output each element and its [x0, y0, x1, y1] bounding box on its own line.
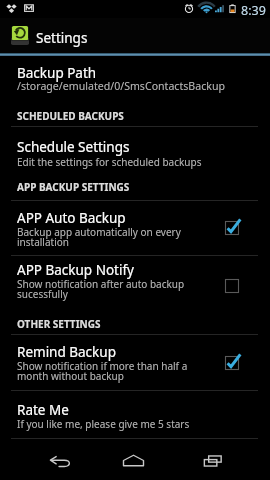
staticText: Remind Backup: [17, 343, 116, 361]
staticText: Settings: [36, 29, 88, 47]
staticText: /storage/emulated/0/SmsContactsBackup: [17, 79, 257, 93]
button[interactable]: Checked: [219, 215, 245, 241]
staticText: APP BACKUP SETTINGS: [17, 180, 130, 194]
button[interactable]: Unchecked: [219, 273, 245, 299]
button[interactable]: Recent apps: [183, 440, 243, 480]
button[interactable]: APP Auto Backup: [0, 201, 270, 255]
staticText: APP Auto Backup: [17, 209, 126, 227]
staticText: Show notification after auto backup suce…: [17, 277, 197, 301]
button[interactable]: Remind Backup: [0, 335, 270, 390]
staticText: Edit the settings for scheduled backups: [17, 155, 222, 169]
staticText: Show notification if more than half a mo…: [17, 359, 197, 383]
staticText: APP Backup Notify: [17, 261, 134, 279]
button[interactable]: APP Backup Notify: [0, 256, 270, 315]
button[interactable]: Backup Path: [0, 56, 270, 104]
button[interactable]: Checked: [219, 350, 245, 376]
staticText: Backup app automatically on every instal…: [17, 225, 197, 249]
staticText: OTHER SETTINGS: [17, 317, 101, 331]
staticText: Rate Me: [17, 401, 69, 419]
staticText: If you like me, please give me 5 stars: [17, 417, 222, 431]
staticText: SCHEDULED BACKUPS: [17, 109, 124, 123]
button[interactable]: Rate Me: [0, 391, 270, 438]
button[interactable]: Back: [30, 441, 90, 480]
staticText: Backup Path: [17, 64, 97, 82]
button[interactable]: Schedule Settings: [0, 127, 270, 178]
staticText: Schedule Settings: [17, 138, 130, 156]
button[interactable]: Home: [103, 440, 163, 480]
staticText: 8:39: [241, 2, 266, 19]
